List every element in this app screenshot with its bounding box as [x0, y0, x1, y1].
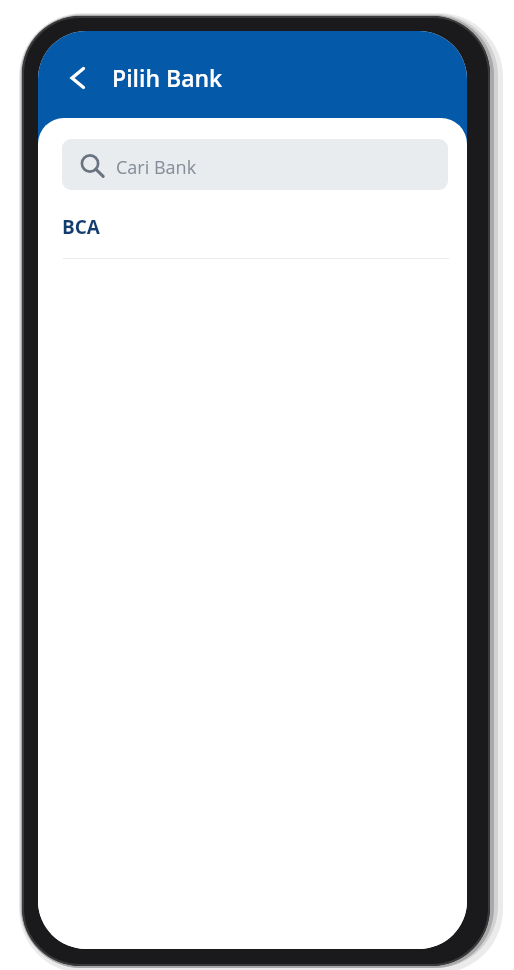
- staticText: BCA: [62, 214, 100, 240]
- button[interactable]: [62, 63, 94, 93]
- button[interactable]: Cari Bank: [62, 139, 448, 190]
- staticText: Pilih Bank: [112, 62, 223, 93]
- button[interactable]: BCA: [38, 214, 467, 259]
- staticText: Cari Bank: [116, 155, 197, 180]
